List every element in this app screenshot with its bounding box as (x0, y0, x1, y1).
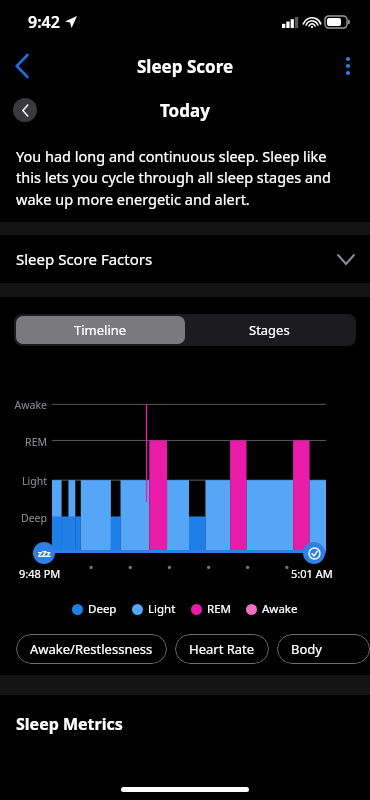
staticText: Sleep Score (137, 55, 234, 78)
staticText: Sleep Metrics (16, 713, 123, 735)
staticText: Deep (88, 601, 117, 617)
staticText: zZz (38, 548, 51, 559)
staticText: Heart Rate (189, 640, 255, 658)
staticText: Awake (262, 601, 298, 617)
staticText: Light (148, 601, 176, 617)
staticText: Deep (5, 511, 47, 525)
staticText: Sleep Score Factors (16, 249, 153, 269)
staticText: Timeline (74, 321, 127, 339)
staticText: Today (160, 99, 210, 122)
button[interactable]: Back (0, 44, 44, 88)
button[interactable]: Stages (185, 316, 354, 344)
staticText: 5:01 AM (291, 566, 333, 581)
staticText: 9:48 PM (19, 566, 61, 581)
staticText: Awake/Restlessness (30, 640, 153, 658)
button[interactable]: Body Balance (277, 634, 370, 664)
staticText: REM (5, 435, 47, 449)
button[interactable]: Timeline (16, 316, 185, 344)
staticText: Light (5, 474, 47, 488)
button[interactable]: More options (326, 44, 370, 88)
staticText: Awake (5, 398, 47, 412)
button[interactable]: Awake/Restlessness (16, 634, 167, 664)
button[interactable]: Sleep Score Factors (0, 235, 370, 283)
staticText: Body Balance (291, 640, 356, 658)
staticText: REM (207, 601, 231, 617)
staticText: 9:42 (28, 11, 60, 33)
button[interactable]: Previous day (13, 98, 37, 122)
staticText: Stages (249, 321, 290, 339)
button[interactable]: Heart Rate (175, 634, 269, 664)
staticText: You had long and continuous sleep. Sleep… (16, 146, 354, 210)
